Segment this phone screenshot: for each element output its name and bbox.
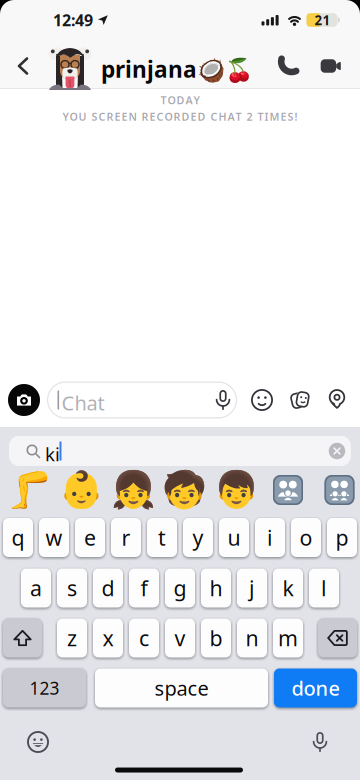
button[interactable]: family emoji <box>324 475 354 505</box>
button[interactable]: Emoji <box>247 385 277 415</box>
button[interactable]: f <box>129 568 159 607</box>
staticText: y <box>192 523 203 552</box>
button[interactable]: k <box>273 568 303 607</box>
button[interactable]: Stickers <box>285 385 315 415</box>
button[interactable]: g <box>165 568 195 607</box>
button[interactable]: Clear search <box>329 443 345 459</box>
staticText: prinjana🥥🍒 <box>101 54 253 84</box>
staticText: k <box>282 574 293 602</box>
staticText: done <box>291 675 339 701</box>
button[interactable]: c <box>129 618 159 657</box>
button[interactable]: w <box>39 518 69 557</box>
button[interactable]: z <box>57 618 87 657</box>
button[interactable]: y <box>183 518 213 557</box>
staticText: 👶 <box>58 469 103 510</box>
button[interactable]: o <box>291 518 321 557</box>
button[interactable]: i <box>255 518 285 557</box>
staticText: i <box>267 523 273 552</box>
staticText: 21 <box>314 11 330 29</box>
button[interactable]: d <box>93 568 123 607</box>
staticText: 123 <box>29 676 59 699</box>
button[interactable]: Back <box>8 51 38 81</box>
button[interactable]: q <box>3 518 33 557</box>
button[interactable]: v <box>165 618 195 657</box>
button[interactable]: b <box>201 618 231 657</box>
staticText: c <box>139 624 149 652</box>
staticText: 👦 <box>213 469 258 510</box>
staticText: m <box>278 624 298 652</box>
staticText: z <box>67 624 77 652</box>
button[interactable]: l <box>309 568 339 607</box>
button[interactable]: x <box>93 618 123 657</box>
staticText: 12:49 <box>53 9 93 31</box>
staticText: f <box>140 574 147 602</box>
staticText: j <box>249 574 255 602</box>
button[interactable]: child emoji <box>162 469 207 510</box>
button[interactable]: family emoji <box>273 475 303 505</box>
staticText: n <box>245 624 258 652</box>
staticText: p <box>335 523 348 552</box>
staticText: w <box>45 523 62 552</box>
staticText: a <box>30 574 42 602</box>
staticText: Y O U S C R E E N R E C O R D E D C H A … <box>62 109 297 124</box>
staticText: 🧒 <box>162 469 207 510</box>
staticText: t <box>158 523 166 552</box>
button[interactable]: Emoji keyboard <box>23 727 53 757</box>
button[interactable]: 123 <box>3 668 86 707</box>
button[interactable]: h <box>201 568 231 607</box>
button[interactable]: done <box>274 668 357 707</box>
staticText: r <box>121 523 130 552</box>
staticText: x <box>102 624 113 652</box>
staticText: 🦵 <box>6 469 51 510</box>
staticText: T O D A Y <box>160 93 199 107</box>
button[interactable]: Video Call <box>314 49 348 83</box>
button[interactable]: s <box>57 568 87 607</box>
button[interactable]: Camera <box>8 384 40 416</box>
button[interactable]: girl emoji <box>110 469 155 510</box>
button[interactable]: baby emoji <box>58 469 103 510</box>
staticText: g <box>173 574 186 602</box>
button[interactable]: r <box>111 518 141 557</box>
staticText: s <box>67 574 77 602</box>
staticText: l <box>321 574 327 602</box>
button[interactable]: leg emoji <box>6 469 51 510</box>
button[interactable]: n <box>237 618 267 657</box>
button[interactable]: Delete <box>318 618 357 657</box>
staticText: q <box>11 523 24 552</box>
staticText: 👧 <box>110 469 155 510</box>
button[interactable]: Call <box>272 49 306 83</box>
button[interactable]: Chat <box>47 381 237 418</box>
staticText: d <box>101 574 114 602</box>
button[interactable]: e <box>75 518 105 557</box>
button[interactable]: p <box>327 518 357 557</box>
staticText: space <box>154 675 208 701</box>
staticText: Chat <box>61 389 104 416</box>
staticText: u <box>227 523 240 552</box>
staticText: b <box>209 624 222 652</box>
button[interactable]: u <box>219 518 249 557</box>
staticText: e <box>84 523 96 552</box>
staticText: h <box>209 574 222 602</box>
button[interactable]: boy emoji <box>213 469 258 510</box>
staticText: ki <box>45 441 60 466</box>
button[interactable]: Dictation <box>305 727 335 757</box>
button[interactable]: m <box>273 618 303 657</box>
button[interactable]: Map <box>322 384 352 414</box>
staticText: o <box>299 523 312 552</box>
button[interactable]: Shift <box>3 618 42 657</box>
button[interactable]: t <box>147 518 177 557</box>
staticText: v <box>174 624 185 652</box>
button[interactable]: j <box>237 568 267 607</box>
button[interactable]: a <box>21 568 51 607</box>
button[interactable]: space <box>95 668 268 707</box>
